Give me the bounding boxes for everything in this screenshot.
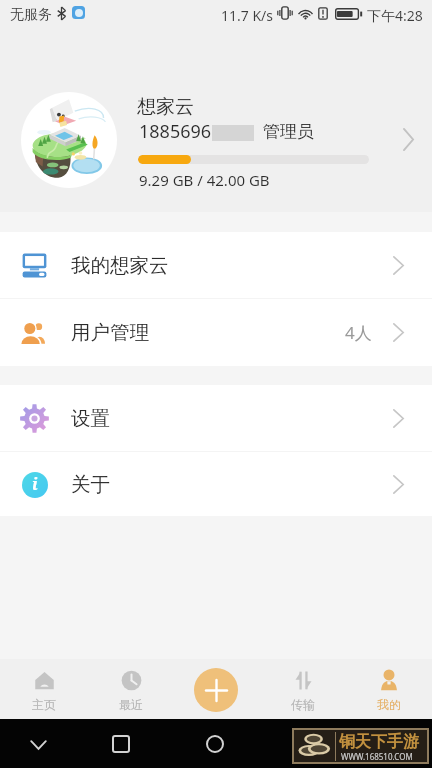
staticText: 想家云 — [137, 95, 194, 119]
button[interactable]: 想家云 — [0, 32, 432, 212]
button[interactable]: 我的 — [346, 659, 432, 719]
staticText: 主页 — [32, 697, 56, 712]
button[interactable]: 最近 — [87, 659, 174, 719]
staticText: 我的 — [377, 697, 401, 712]
button[interactable]: Recents — [107, 730, 134, 757]
staticText: 无服务 — [10, 6, 52, 24]
staticText: i — [32, 473, 38, 495]
staticText: 11.7 K/s — [221, 6, 273, 25]
staticText: WWW.168510.COM — [341, 751, 413, 762]
button[interactable]: Home — [201, 730, 228, 757]
staticText: 设置 — [71, 406, 110, 431]
staticText: 4人 — [345, 321, 372, 344]
staticText: 1885696 — [139, 119, 212, 144]
staticText: 9.29 GB / 42.00 GB — [139, 170, 270, 190]
button[interactable]: 我的想家云 — [0, 232, 432, 298]
button[interactable]: 主页 — [0, 659, 87, 719]
staticText: 管理员 — [263, 121, 314, 142]
staticText: 下午4:28 — [367, 6, 423, 25]
button[interactable]: i — [0, 452, 432, 516]
staticText: 我的想家云 — [71, 253, 169, 278]
staticText: 关于 — [71, 472, 110, 497]
button[interactable]: 用户管理 — [0, 299, 432, 366]
button[interactable]: Add — [194, 668, 238, 712]
button[interactable]: 设置 — [0, 385, 432, 451]
staticText: 最近 — [119, 697, 143, 712]
staticText: 铜天下手游 — [339, 732, 419, 752]
button[interactable]: Back — [25, 731, 52, 758]
button[interactable]: 传输 — [260, 659, 346, 719]
staticText: 用户管理 — [71, 320, 149, 345]
staticText: 传输 — [291, 697, 315, 712]
